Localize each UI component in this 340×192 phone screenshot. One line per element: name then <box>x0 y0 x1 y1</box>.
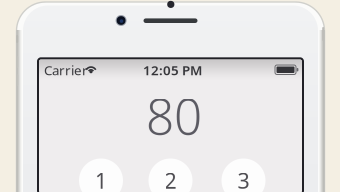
staticText: Carrier <box>44 61 88 79</box>
staticText: 2 <box>164 166 176 192</box>
button[interactable]: 3 <box>221 158 265 192</box>
button[interactable]: 1 <box>79 158 123 192</box>
staticText: 3 <box>237 166 249 192</box>
staticText: 1 <box>95 166 107 192</box>
button[interactable]: 2 <box>148 158 192 192</box>
staticText: 80 <box>146 83 202 148</box>
staticText: 12:05 PM <box>143 61 202 79</box>
